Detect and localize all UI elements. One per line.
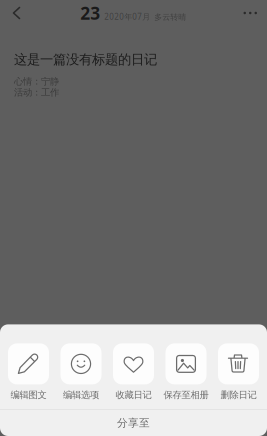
button[interactable]: 删除日记 bbox=[218, 343, 259, 400]
staticText: 多云转晴 bbox=[154, 12, 186, 22]
staticText: 这是一篇没有标题的日记 bbox=[14, 51, 157, 68]
staticText: 2020年07月 bbox=[104, 11, 150, 22]
staticText: 23 bbox=[80, 1, 100, 24]
staticText: 心情：宁静 bbox=[14, 76, 59, 87]
button[interactable]: 保存至相册 bbox=[165, 343, 206, 400]
button[interactable]: 分享至 bbox=[0, 410, 267, 436]
button[interactable]: 编辑图文 bbox=[8, 343, 49, 400]
button[interactable]: More bbox=[233, 4, 267, 22]
staticText: 活动：工作 bbox=[14, 87, 59, 98]
staticText: 编辑选项 bbox=[63, 389, 99, 401]
staticText: 收藏日记 bbox=[115, 389, 151, 401]
button[interactable]: Back bbox=[0, 0, 33, 26]
button[interactable]: 编辑选项 bbox=[60, 343, 101, 400]
staticText: 分享至 bbox=[117, 416, 150, 429]
button[interactable]: 收藏日记 bbox=[113, 343, 154, 400]
staticText: 保存至相册 bbox=[163, 389, 208, 401]
staticText: 编辑图文 bbox=[10, 389, 46, 401]
staticText: 删除日记 bbox=[220, 389, 256, 401]
